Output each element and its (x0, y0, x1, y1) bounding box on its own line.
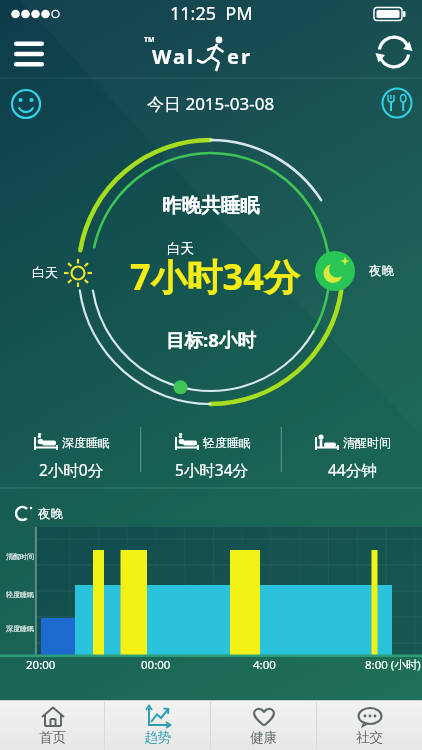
staticText: 昨晚共睡眠 (162, 193, 260, 218)
staticText: 7小时34分 (130, 252, 300, 301)
staticText: 深度睡眠 (6, 624, 34, 633)
staticText: 目标:8小时 (166, 327, 256, 352)
button[interactable] (8, 86, 46, 122)
staticText: 清醒时间 (6, 552, 34, 561)
staticText: 8:00 (小时) (365, 657, 421, 673)
button[interactable] (373, 35, 417, 77)
staticText: 轻度睡眠 (203, 435, 251, 450)
button[interactable]: 社交 (317, 700, 422, 750)
staticText: er (227, 43, 252, 70)
staticText: 社交 (356, 729, 383, 746)
staticText: 白天 (167, 240, 194, 257)
staticText: 00:00 (141, 657, 171, 673)
staticText: 4:00 (253, 657, 276, 673)
staticText: 白天 (32, 264, 58, 280)
staticText: 20:00 (26, 657, 56, 673)
staticText: 11:25 PM (170, 1, 253, 26)
staticText: TM (144, 35, 155, 45)
button[interactable] (8, 34, 52, 74)
staticText: 首页 (39, 729, 66, 746)
staticText: 清醒时间 (343, 435, 391, 450)
staticText: 44分钟 (328, 459, 377, 480)
staticText: 2小时0分 (39, 459, 104, 480)
staticText: 轻度睡眠 (6, 590, 34, 599)
button[interactable] (378, 84, 418, 122)
staticText: Wal (152, 43, 195, 70)
staticText: 夜晚 (38, 506, 63, 522)
button[interactable] (313, 249, 357, 293)
staticText: 5小时34分 (175, 459, 249, 480)
button[interactable]: 趋势 (105, 700, 210, 750)
staticText: 今日 2015-03-08 (147, 92, 275, 115)
staticText: 趋势 (144, 729, 171, 746)
staticText: 夜晚 (369, 263, 394, 279)
button[interactable]: 首页 (0, 700, 104, 750)
button[interactable]: 健康 (211, 700, 316, 750)
staticText: 健康 (250, 729, 277, 746)
staticText: 深度睡眠 (62, 435, 110, 450)
